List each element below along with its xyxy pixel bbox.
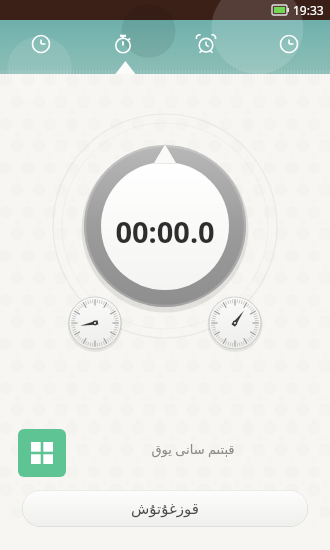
button[interactable]: Laps bbox=[18, 429, 66, 477]
staticText: قېتىم سانى يوق bbox=[151, 440, 235, 458]
button[interactable]: قوزغۇتۇش bbox=[22, 490, 308, 527]
staticText: 00:00.0 bbox=[115, 212, 215, 251]
button[interactable]: Clock bbox=[0, 20, 82, 74]
staticText: 19:33 bbox=[293, 2, 324, 18]
button[interactable]: Alarm bbox=[164, 20, 247, 74]
staticText: قوزغۇتۇش bbox=[131, 500, 199, 517]
button[interactable]: Timer bbox=[247, 20, 330, 74]
button[interactable]: Stopwatch bbox=[82, 20, 164, 74]
